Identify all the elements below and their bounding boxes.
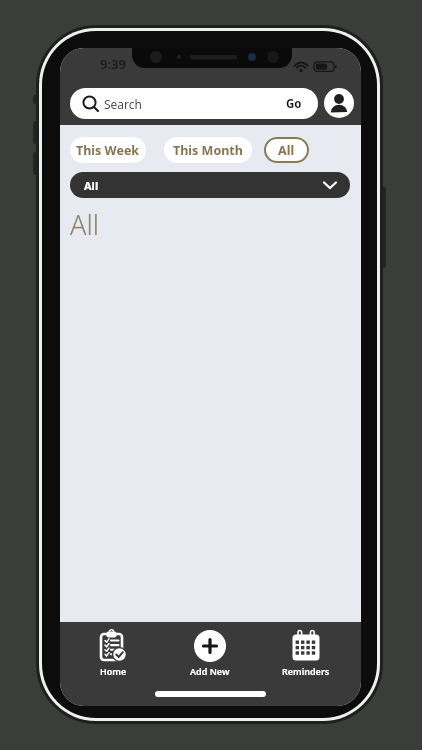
button[interactable]: All bbox=[264, 137, 309, 163]
button[interactable]: Search bbox=[70, 88, 318, 119]
staticText: Add New bbox=[190, 665, 230, 677]
staticText: 9:39 bbox=[100, 55, 126, 73]
staticText: All bbox=[84, 178, 99, 193]
button[interactable]: Home bbox=[93, 630, 133, 677]
button[interactable]: All bbox=[70, 172, 350, 198]
staticText: This Month bbox=[173, 142, 243, 159]
button[interactable]: Reminders bbox=[276, 630, 336, 677]
button[interactable] bbox=[324, 88, 354, 118]
staticText: Go bbox=[286, 96, 302, 112]
staticText: Home bbox=[100, 665, 127, 677]
staticText: This Week bbox=[76, 142, 140, 159]
staticText: Search bbox=[104, 96, 142, 112]
button[interactable]: This Month bbox=[164, 137, 252, 163]
staticText: All bbox=[70, 206, 99, 243]
staticText: All bbox=[278, 142, 295, 159]
button[interactable]: Add New bbox=[185, 630, 234, 677]
staticText: Reminders bbox=[282, 665, 330, 677]
button[interactable]: This Week bbox=[70, 137, 146, 163]
